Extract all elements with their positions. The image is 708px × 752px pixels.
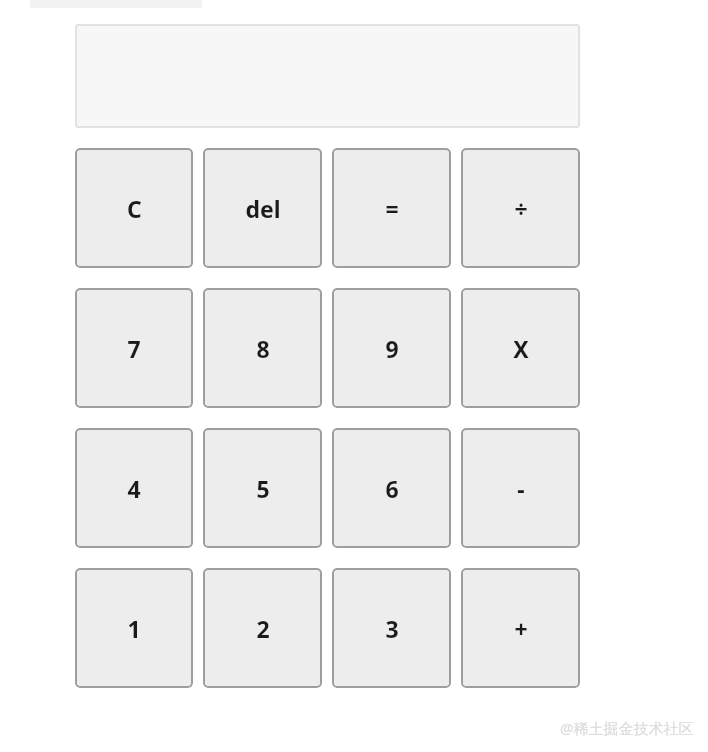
button[interactable]: Clear — [75, 148, 193, 268]
button[interactable]: Nine — [332, 288, 451, 408]
button[interactable]: Seven — [75, 288, 193, 408]
staticText: del — [245, 193, 281, 224]
staticText: 6 — [385, 473, 399, 504]
staticText: ÷ — [514, 193, 528, 224]
staticText: + — [514, 613, 528, 644]
staticText: - — [517, 473, 525, 504]
staticText: 2 — [256, 613, 270, 644]
staticText: 7 — [127, 333, 141, 364]
staticText: = — [385, 193, 399, 224]
button[interactable]: Three — [332, 568, 451, 688]
button[interactable]: Five — [203, 428, 322, 548]
button[interactable]: Minus — [461, 428, 580, 548]
staticText: 9 — [385, 333, 399, 364]
staticText: C — [127, 193, 142, 224]
staticText: @稀土掘金技术社区 — [560, 718, 694, 738]
staticText: X — [513, 333, 529, 364]
button[interactable]: Eight — [203, 288, 322, 408]
button[interactable]: Four — [75, 428, 193, 548]
staticText: 5 — [256, 473, 270, 504]
staticText: 4 — [127, 473, 141, 504]
button[interactable]: Plus — [461, 568, 580, 688]
button[interactable] — [75, 24, 580, 128]
button[interactable]: One — [75, 568, 193, 688]
staticText: 8 — [256, 333, 270, 364]
button[interactable]: Multiply — [461, 288, 580, 408]
button[interactable]: Equals — [332, 148, 451, 268]
staticText: 3 — [385, 613, 399, 644]
button[interactable]: Two — [203, 568, 322, 688]
staticText: 1 — [127, 613, 141, 644]
button[interactable]: Delete — [203, 148, 322, 268]
button[interactable]: Six — [332, 428, 451, 548]
button[interactable]: Divide — [461, 148, 580, 268]
